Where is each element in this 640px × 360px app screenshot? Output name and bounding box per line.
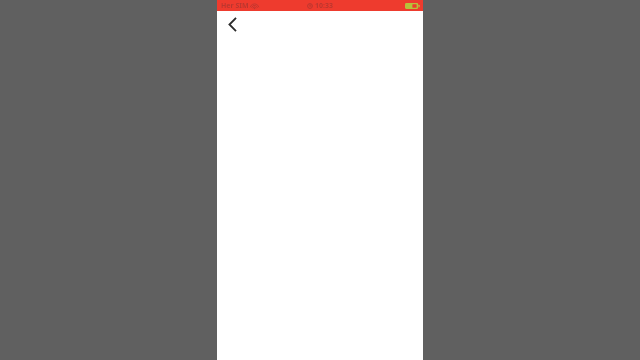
staticText: 10:33: [315, 1, 333, 11]
button[interactable]: Back: [221, 13, 243, 35]
staticText: Her SIM: [221, 1, 249, 11]
